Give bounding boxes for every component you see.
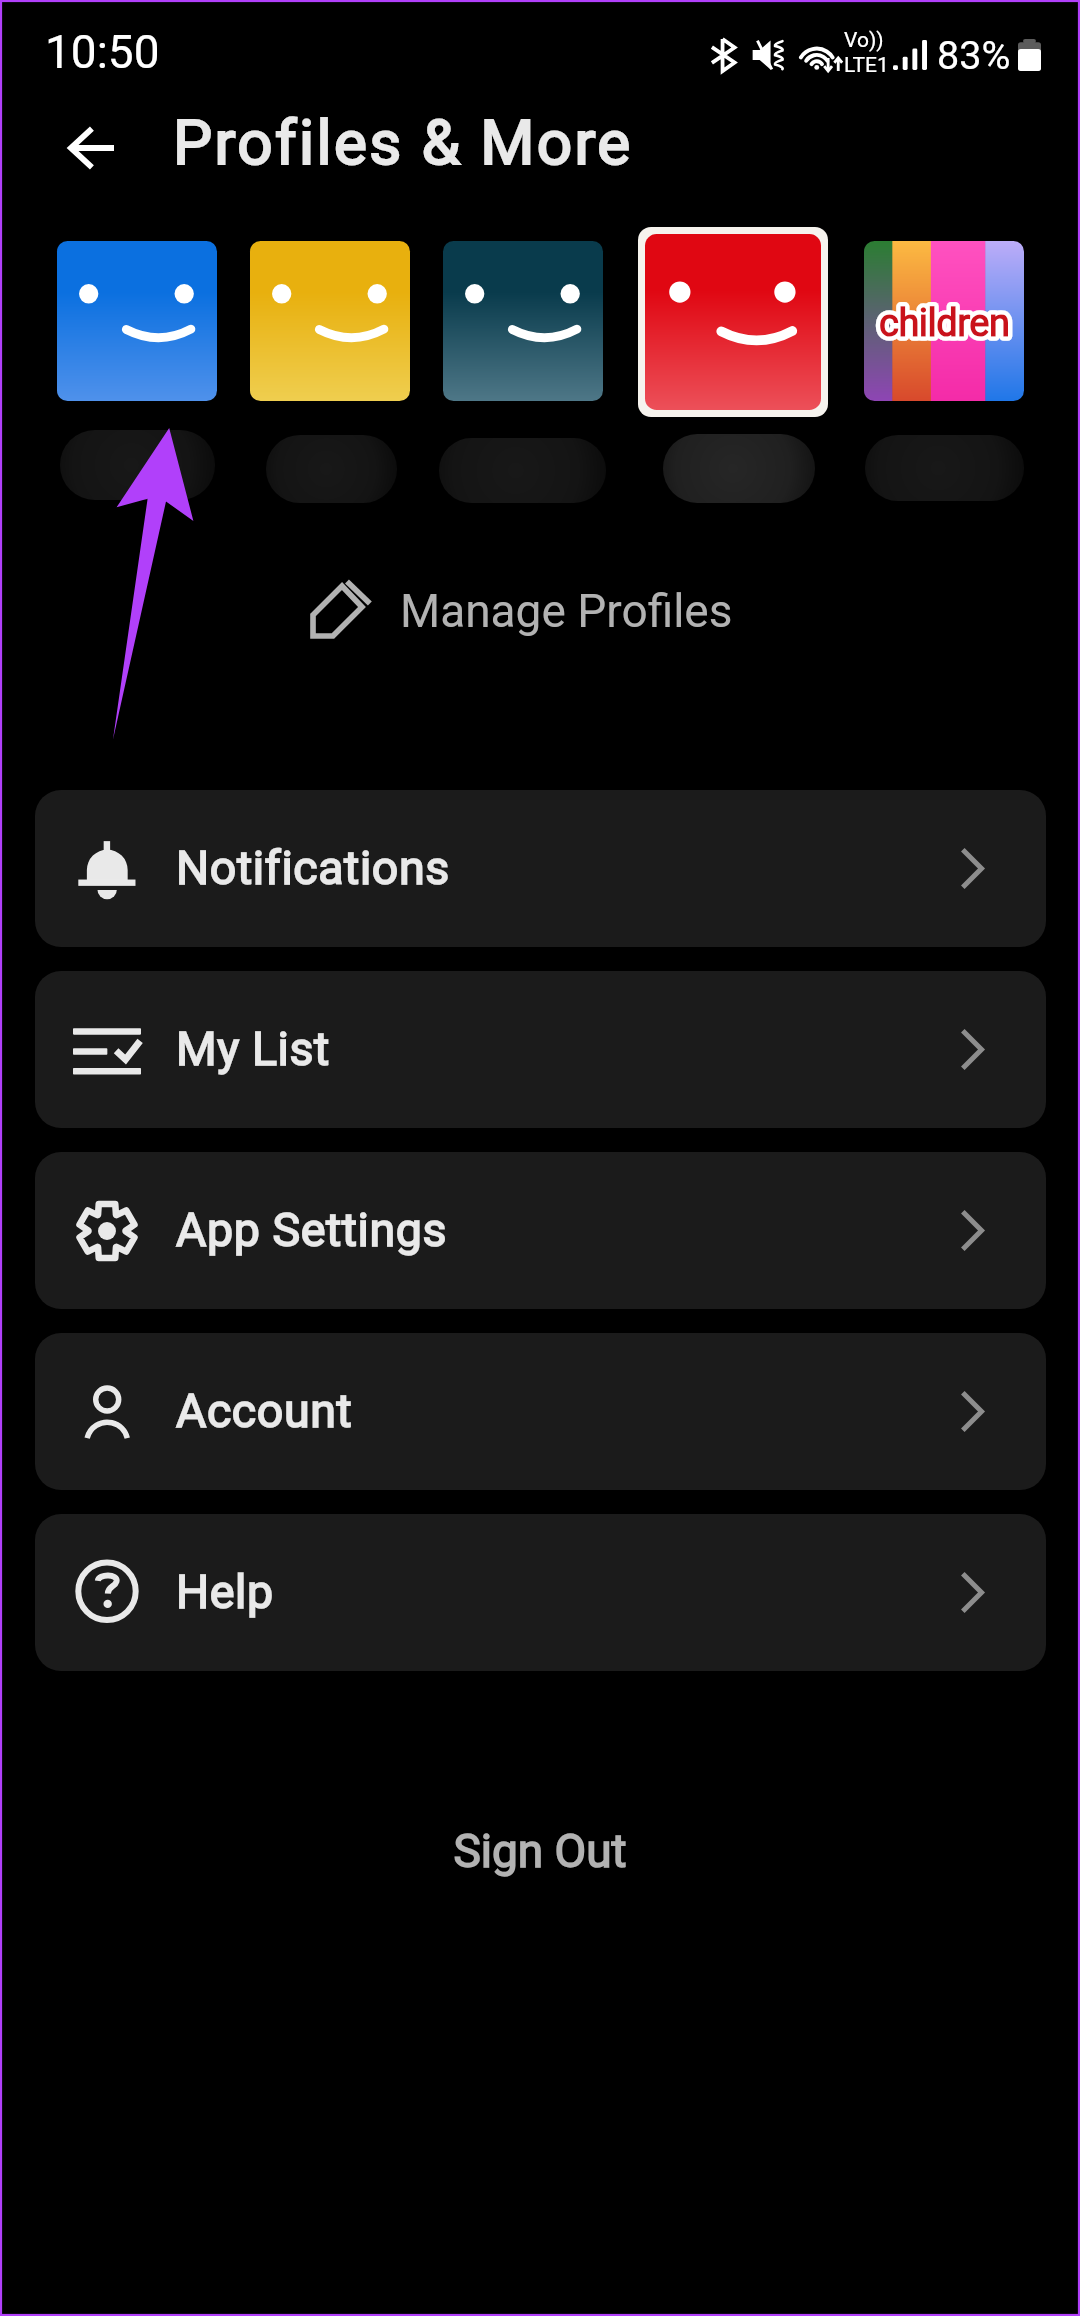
staticText: 10:50 — [45, 25, 160, 79]
button[interactable]: App Settings — [35, 1152, 1046, 1309]
staticText: children — [879, 301, 1010, 346]
button[interactable] — [638, 227, 828, 417]
button[interactable] — [250, 241, 410, 401]
staticText: Sign Out — [453, 1824, 627, 1878]
button[interactable]: children — [864, 241, 1024, 401]
staticText: Help — [176, 1565, 274, 1619]
button[interactable] — [57, 241, 217, 401]
staticText: App Settings — [176, 1203, 448, 1257]
button[interactable]: Account — [35, 1333, 1046, 1490]
button[interactable]: Back — [56, 113, 124, 183]
staticText: children — [879, 301, 1010, 346]
button[interactable]: Notifications — [35, 790, 1046, 947]
button[interactable]: Sign Out — [393, 1802, 687, 1900]
button[interactable]: Help — [35, 1514, 1046, 1671]
staticText: Vo)) — [844, 28, 884, 53]
staticText: Account — [176, 1384, 353, 1438]
staticText: LTE1 — [844, 53, 889, 78]
staticText: My List — [176, 1022, 330, 1076]
staticText: 83% — [937, 32, 1011, 78]
button[interactable] — [443, 241, 603, 401]
button[interactable]: My List — [35, 971, 1046, 1128]
staticText: Profiles & More — [173, 106, 633, 179]
button[interactable]: Manage Profiles — [300, 568, 743, 650]
staticText: Notifications — [176, 841, 450, 895]
staticText: Manage Profiles — [400, 584, 733, 638]
